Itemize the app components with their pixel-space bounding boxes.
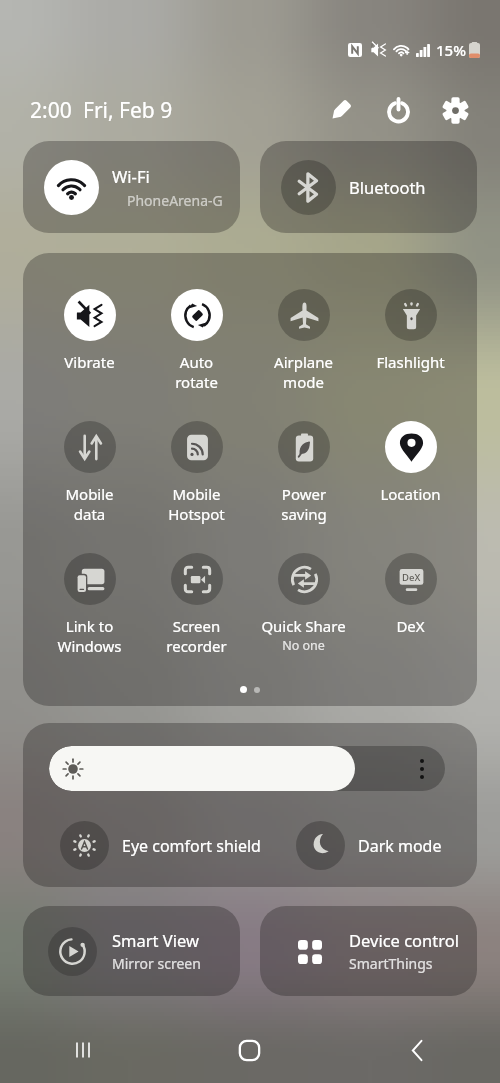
button[interactable]: Airplane mode <box>250 289 357 421</box>
staticText: Mobile data <box>65 484 114 524</box>
staticText: 2:00 <box>30 96 72 125</box>
button[interactable]: Link to Windows <box>36 553 143 685</box>
staticText: PhoneArena-G <box>127 191 223 210</box>
staticText: No one <box>282 637 325 654</box>
staticText: Mirror screen <box>112 954 201 973</box>
button[interactable]: Power saving <box>250 421 357 553</box>
button[interactable]: Wi-Fi <box>23 141 240 233</box>
button[interactable]: Vibrate <box>36 289 143 421</box>
button[interactable]: Quick Share <box>250 553 357 685</box>
button[interactable]: DeX <box>357 553 464 685</box>
button[interactable]: Dark mode <box>296 821 477 870</box>
staticText: Mobile Hotspot <box>168 484 225 524</box>
staticText: Fri, Feb 9 <box>83 96 173 125</box>
button[interactable]: Edit quick settings <box>318 88 364 132</box>
staticText: Auto rotate <box>175 352 218 392</box>
button[interactable]: Mobile data <box>36 421 143 553</box>
staticText: Screen recorder <box>166 616 227 656</box>
button[interactable]: Mobile Hotspot <box>143 421 250 553</box>
button[interactable]: Recents <box>0 1017 166 1083</box>
button[interactable]: Location <box>357 421 464 553</box>
button[interactable]: Settings <box>432 88 478 132</box>
staticText: Eye comfort shield <box>122 835 261 857</box>
staticText: Link to Windows <box>57 616 122 656</box>
staticText: Quick Share <box>261 616 346 636</box>
staticText: Bluetooth <box>349 176 426 198</box>
staticText: SmartThings <box>349 954 433 973</box>
button[interactable]: Home <box>166 1017 333 1083</box>
button[interactable]: Screen recorder <box>143 553 250 685</box>
button[interactable]: Back <box>333 1017 500 1083</box>
staticText: 15% <box>436 40 466 60</box>
button[interactable]: Brightness <box>49 746 445 791</box>
staticText: Smart View <box>112 929 199 951</box>
button[interactable]: Bluetooth <box>260 141 477 233</box>
button[interactable]: Eye comfort shield <box>60 821 296 870</box>
button[interactable]: Auto rotate <box>143 289 250 421</box>
staticText: Device control <box>349 929 459 951</box>
staticText: DeX <box>402 571 421 584</box>
button[interactable]: Flashlight <box>357 289 464 421</box>
staticText: Power saving <box>281 484 327 524</box>
staticText: Wi-Fi <box>112 165 150 187</box>
button[interactable]: Smart View <box>23 906 240 996</box>
staticText: Dark mode <box>358 835 442 857</box>
staticText: Airplane mode <box>274 352 333 392</box>
button[interactable]: Device control <box>260 906 477 996</box>
staticText: DeX <box>396 616 425 636</box>
staticText: Flashlight <box>376 352 445 372</box>
staticText: Vibrate <box>64 352 115 372</box>
staticText: Location <box>380 484 441 504</box>
button[interactable]: Power <box>375 88 421 132</box>
